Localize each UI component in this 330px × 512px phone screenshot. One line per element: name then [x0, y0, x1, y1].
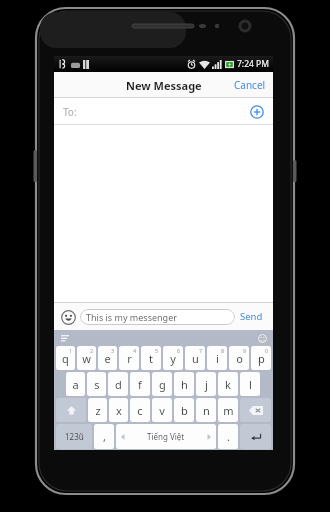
button[interactable]: Add recipient [248, 103, 266, 121]
button[interactable]: q [56, 346, 75, 370]
staticText: 6 [177, 347, 181, 354]
button[interactable]: s [87, 372, 106, 396]
staticText: 1 [69, 347, 73, 354]
staticText: c [137, 403, 143, 418]
staticText: , [103, 429, 106, 444]
button[interactable]: n [196, 398, 216, 422]
staticText: s [94, 377, 100, 392]
button[interactable]: j [196, 372, 216, 396]
staticText: a [72, 377, 79, 392]
staticText: . [227, 429, 230, 444]
button[interactable]: k [218, 372, 238, 396]
button[interactable]: Shift [56, 398, 86, 422]
staticText: h [181, 377, 188, 392]
button[interactable]: . [218, 424, 238, 449]
staticText: o [236, 351, 243, 366]
staticText: v [159, 403, 165, 418]
button[interactable]: b [174, 398, 194, 422]
button[interactable]: e [98, 346, 117, 370]
staticText: This is my messenger [86, 311, 177, 323]
staticText: 0 [265, 347, 269, 354]
staticText: q [62, 351, 69, 366]
staticText: y [170, 351, 176, 366]
button[interactable]: Emoji [59, 308, 77, 326]
button[interactable]: g [152, 372, 172, 396]
button[interactable]: z [88, 398, 107, 422]
button[interactable]: c [130, 398, 150, 422]
button[interactable]: Emoji keyboard [256, 332, 268, 344]
button[interactable]: Send [235, 303, 268, 330]
staticText: b [181, 403, 188, 418]
staticText: d [115, 377, 122, 392]
staticText: r [127, 351, 132, 366]
staticText: 3 [111, 347, 115, 354]
button[interactable]: Tiếng Việt [116, 424, 216, 449]
button[interactable]: y [163, 346, 183, 370]
button[interactable]: x [109, 398, 128, 422]
button[interactable]: r [119, 346, 139, 370]
staticText: f [138, 377, 142, 392]
staticText: 5 [155, 347, 159, 354]
button[interactable]: Cancel [227, 72, 273, 98]
staticText: i [216, 351, 219, 366]
button[interactable]: a [66, 372, 85, 396]
button[interactable]: This is my messenger [80, 309, 235, 325]
staticText: e [104, 351, 111, 366]
button[interactable]: h [174, 372, 194, 396]
staticText: New Message [126, 78, 202, 93]
staticText: Tiếng Việt [147, 431, 185, 442]
button[interactable]: Numbers [56, 424, 92, 449]
button[interactable]: o [229, 346, 249, 370]
staticText: 4 [133, 347, 137, 354]
staticText: x [116, 403, 122, 418]
button[interactable]: u [185, 346, 205, 370]
button[interactable]: f [130, 372, 150, 396]
button[interactable]: p [251, 346, 271, 370]
staticText: g [159, 377, 166, 392]
staticText: l [249, 377, 252, 392]
button[interactable]: t [141, 346, 161, 370]
staticText: To: [63, 105, 77, 119]
staticText: w [82, 351, 91, 366]
staticText: Cancel [234, 78, 266, 92]
staticText: m [223, 403, 234, 418]
staticText: k [225, 377, 231, 392]
button[interactable]: d [108, 372, 128, 396]
staticText: 2 [90, 347, 94, 354]
button[interactable]: i [207, 346, 227, 370]
staticText: 9 [243, 347, 247, 354]
staticText: z [95, 403, 101, 418]
button[interactable]: l [240, 372, 260, 396]
staticText: Send [240, 310, 263, 323]
staticText: n [203, 403, 210, 418]
button[interactable]: Menu [59, 332, 70, 343]
staticText: 7 [199, 347, 203, 354]
staticText: j [205, 377, 208, 392]
button[interactable]: Backspace [240, 398, 271, 422]
staticText: t [149, 351, 153, 366]
staticText: u [192, 351, 199, 366]
staticText: p [258, 351, 265, 366]
button[interactable]: v [152, 398, 172, 422]
button[interactable]: w [77, 346, 96, 370]
staticText: 123ũ [65, 431, 84, 442]
staticText: 8 [221, 347, 225, 354]
button[interactable]: , [94, 424, 114, 449]
button[interactable]: m [218, 398, 238, 422]
staticText: 7:24 PM [237, 58, 269, 70]
button[interactable]: Enter [240, 424, 271, 449]
